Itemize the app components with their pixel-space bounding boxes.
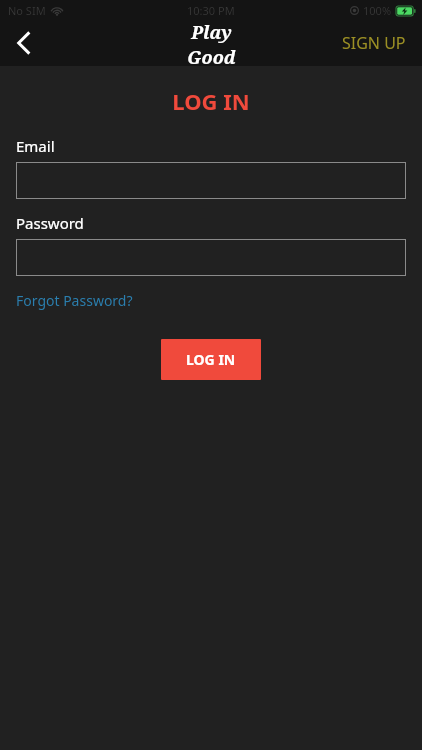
button[interactable]: Forgot Password?	[16, 289, 133, 312]
staticText: Play	[191, 20, 232, 45]
button[interactable]: Text input	[16, 239, 406, 276]
staticText: 10:30 PM	[187, 3, 235, 18]
staticText: Password	[16, 213, 84, 233]
staticText: LOG IN	[186, 350, 236, 369]
staticText: No SIM	[8, 3, 46, 18]
staticText: SIGN UP	[342, 32, 406, 54]
staticText: Good	[187, 45, 236, 65]
button[interactable]: Back	[0, 20, 46, 66]
button[interactable]: Text input	[16, 162, 406, 199]
staticText: LOG IN	[16, 86, 406, 116]
staticText: 100%	[363, 3, 392, 18]
staticText: Email	[16, 136, 55, 156]
button[interactable]: SIGN UP	[326, 22, 422, 64]
button[interactable]: LOG IN	[161, 339, 261, 380]
staticText: Forgot Password?	[16, 291, 133, 310]
